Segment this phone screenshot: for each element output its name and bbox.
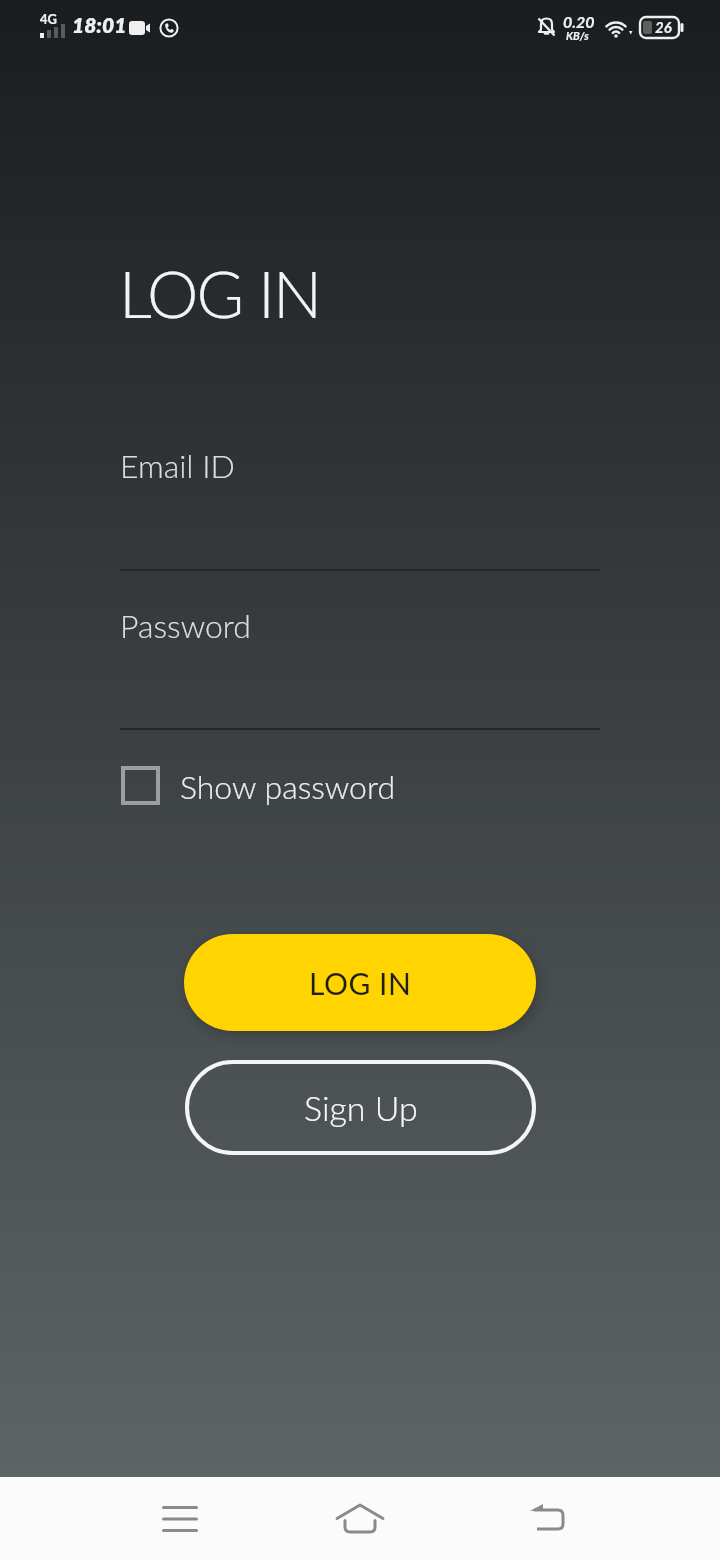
button[interactable]: Show password <box>121 766 396 805</box>
button[interactable] <box>120 654 600 730</box>
button[interactable] <box>120 1477 240 1560</box>
staticText: Sign Up <box>304 1087 418 1128</box>
button[interactable] <box>300 1477 420 1560</box>
staticText: 18:01 <box>72 12 127 37</box>
staticText: Email ID <box>120 446 235 484</box>
staticText: KB/s <box>566 29 589 42</box>
staticText: LOG IN <box>309 965 412 1001</box>
button[interactable]: LOG IN <box>184 934 536 1031</box>
staticText: Show password <box>180 767 396 805</box>
staticText: 4G <box>40 11 57 27</box>
button[interactable] <box>489 1477 609 1560</box>
staticText: Password <box>120 606 251 644</box>
staticText: LOG IN <box>119 254 320 332</box>
staticText: 26 <box>655 18 672 36</box>
staticText: 0.20 <box>563 12 595 31</box>
button[interactable]: Sign Up <box>185 1060 536 1155</box>
